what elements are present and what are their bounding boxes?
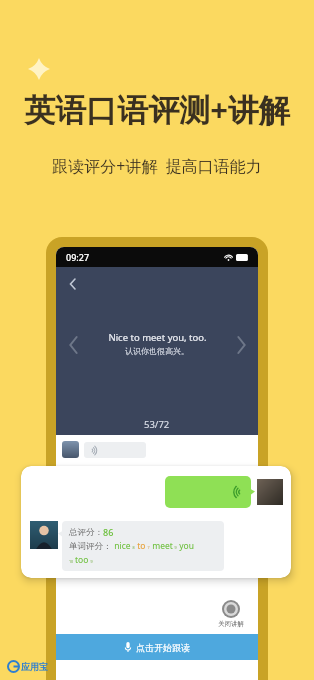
button[interactable]: 点击开始跟读	[56, 634, 258, 660]
staticText: too	[75, 554, 89, 566]
staticText: Nice to meet you, too.	[108, 331, 207, 344]
button[interactable]: Play my recording	[165, 476, 251, 508]
staticText: ₈	[131, 542, 135, 550]
staticText: meet	[150, 540, 173, 552]
staticText: you	[177, 540, 194, 552]
staticText: 点击开始跟读	[136, 642, 190, 653]
button[interactable]: Play audio	[84, 442, 146, 458]
staticText: 关闭讲解	[218, 620, 244, 628]
button[interactable]: 关闭讲解	[218, 600, 244, 628]
button[interactable]: Back	[62, 273, 84, 295]
staticText: to	[135, 540, 146, 552]
staticText: 英语口语评测+讲解	[0, 88, 314, 130]
staticText: 认识你也很高兴。	[125, 346, 189, 356]
staticText: 53/72	[144, 418, 170, 431]
button[interactable]: Previous	[60, 332, 86, 358]
staticText: 跟读评分+讲解 提高口语能力	[0, 155, 314, 177]
staticText: ₉	[173, 542, 177, 550]
staticText: 应用宝	[21, 661, 48, 672]
staticText: ₁₀	[69, 556, 75, 564]
staticText: ₉	[89, 556, 93, 564]
staticText: ₇	[146, 542, 150, 550]
staticText: 86	[103, 526, 114, 538]
staticText: 单词评分：	[69, 541, 112, 552]
staticText: 09:27	[66, 251, 90, 263]
staticText: 总评分：	[69, 527, 103, 538]
staticText: nice	[112, 540, 131, 552]
button[interactable]: Next	[228, 332, 254, 358]
